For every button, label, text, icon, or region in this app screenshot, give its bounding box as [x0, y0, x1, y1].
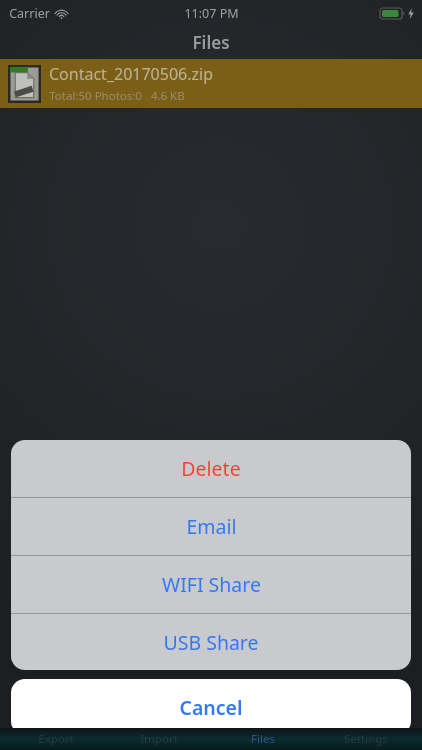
button[interactable]: USB Share: [11, 614, 411, 670]
staticText: Files: [251, 731, 275, 747]
staticText: Settings: [344, 731, 388, 747]
staticText: Email: [186, 513, 237, 540]
staticText: Contact_20170506.zip: [49, 63, 213, 85]
button[interactable]: Email: [11, 498, 411, 555]
button[interactable]: Export: [8, 728, 104, 750]
button[interactable]: Import: [111, 728, 207, 750]
other: Battery charging: [380, 8, 405, 19]
button[interactable]: Settings: [318, 728, 414, 750]
staticText: Export: [38, 731, 74, 747]
staticText: Carrier: [9, 5, 50, 22]
staticText: USB Share: [163, 629, 259, 656]
staticText: Cancel: [179, 694, 243, 721]
button[interactable]: Delete: [11, 440, 411, 497]
staticText: WIFI Share: [162, 571, 261, 598]
staticText: 11:07 PM: [184, 5, 239, 22]
staticText: Delete: [181, 455, 241, 482]
staticText: Files: [192, 31, 230, 54]
button[interactable]: Cancel: [11, 679, 411, 735]
staticText: Import: [140, 731, 178, 747]
button[interactable]: WIFI Share: [11, 556, 411, 613]
button[interactable]: Files: [215, 728, 311, 750]
staticText: Total:50 Photos:0 4.6 KB: [49, 88, 185, 104]
other: Wi-Fi signal: [55, 9, 68, 19]
button[interactable]: Contact_20170506.zip: [0, 59, 422, 108]
